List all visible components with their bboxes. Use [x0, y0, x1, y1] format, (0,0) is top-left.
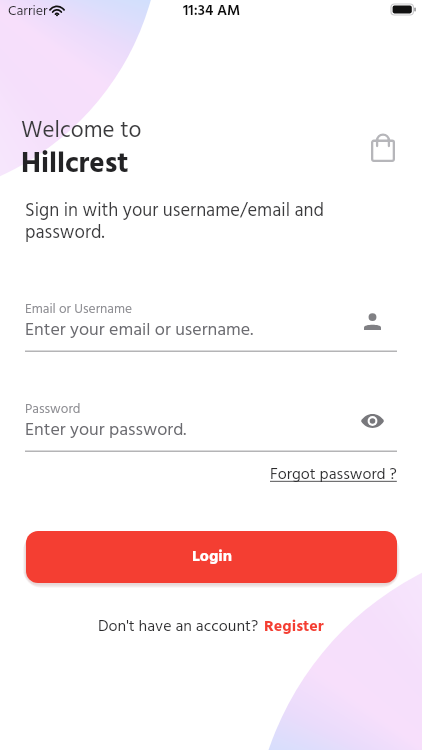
staticText: Forgot password ?	[270, 462, 397, 488]
staticText: Email or Username	[25, 299, 133, 321]
staticText: 11:34 AM	[183, 0, 241, 20]
staticText: Welcome to	[21, 113, 142, 150]
button[interactable]: Register	[264, 614, 324, 640]
staticText: Sign in with your username/email and pas…	[25, 196, 342, 248]
button[interactable]: Password	[356, 405, 388, 437]
staticText: Don't have an account?	[98, 614, 259, 640]
staticText: Enter your email or username.	[25, 316, 254, 345]
button[interactable]: Login	[26, 531, 397, 583]
staticText: Login	[192, 544, 232, 570]
staticText: Carrier	[8, 0, 48, 21]
staticText: Password	[25, 399, 81, 421]
button[interactable]: Email or Username	[356, 305, 388, 337]
staticText: Register	[264, 614, 324, 640]
button[interactable]: Shopping bag	[361, 125, 405, 169]
button[interactable]: Forgot password ?	[269, 459, 398, 491]
staticText: Enter your password.	[25, 416, 187, 445]
staticText: Hillcrest	[21, 141, 129, 187]
